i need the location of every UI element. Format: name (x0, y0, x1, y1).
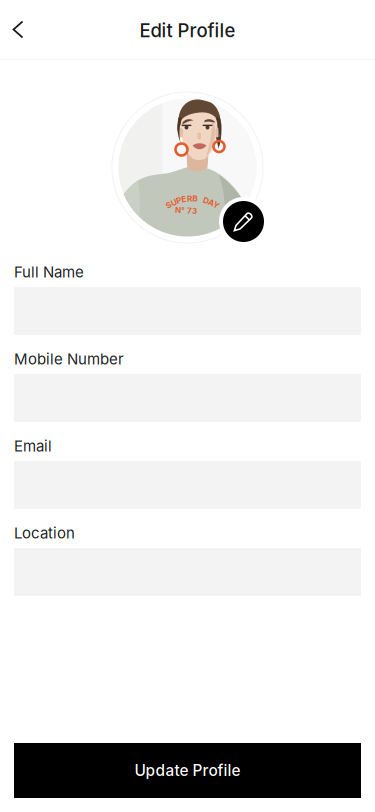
staticText: Edit Profile (139, 19, 235, 42)
staticText: N° 73 (180, 202, 202, 212)
button[interactable]: Change profile photo (219, 197, 268, 246)
staticText: R (187, 194, 192, 203)
staticText: P (176, 196, 181, 205)
staticText: S (166, 200, 171, 210)
button[interactable]: Back (0, 7, 36, 51)
staticText: Update Profile (134, 761, 240, 780)
staticText: Y (213, 200, 219, 210)
staticText: U (171, 197, 177, 207)
staticText: A (208, 197, 214, 207)
staticText: Mobile Number (14, 350, 124, 368)
staticText: Full Name (14, 263, 84, 281)
staticText: Email (14, 437, 52, 455)
button[interactable]: Update Profile (14, 743, 361, 798)
staticText: D (203, 196, 209, 205)
staticText: E (181, 194, 186, 204)
staticText: Location (14, 524, 75, 542)
staticText: B (192, 194, 197, 203)
